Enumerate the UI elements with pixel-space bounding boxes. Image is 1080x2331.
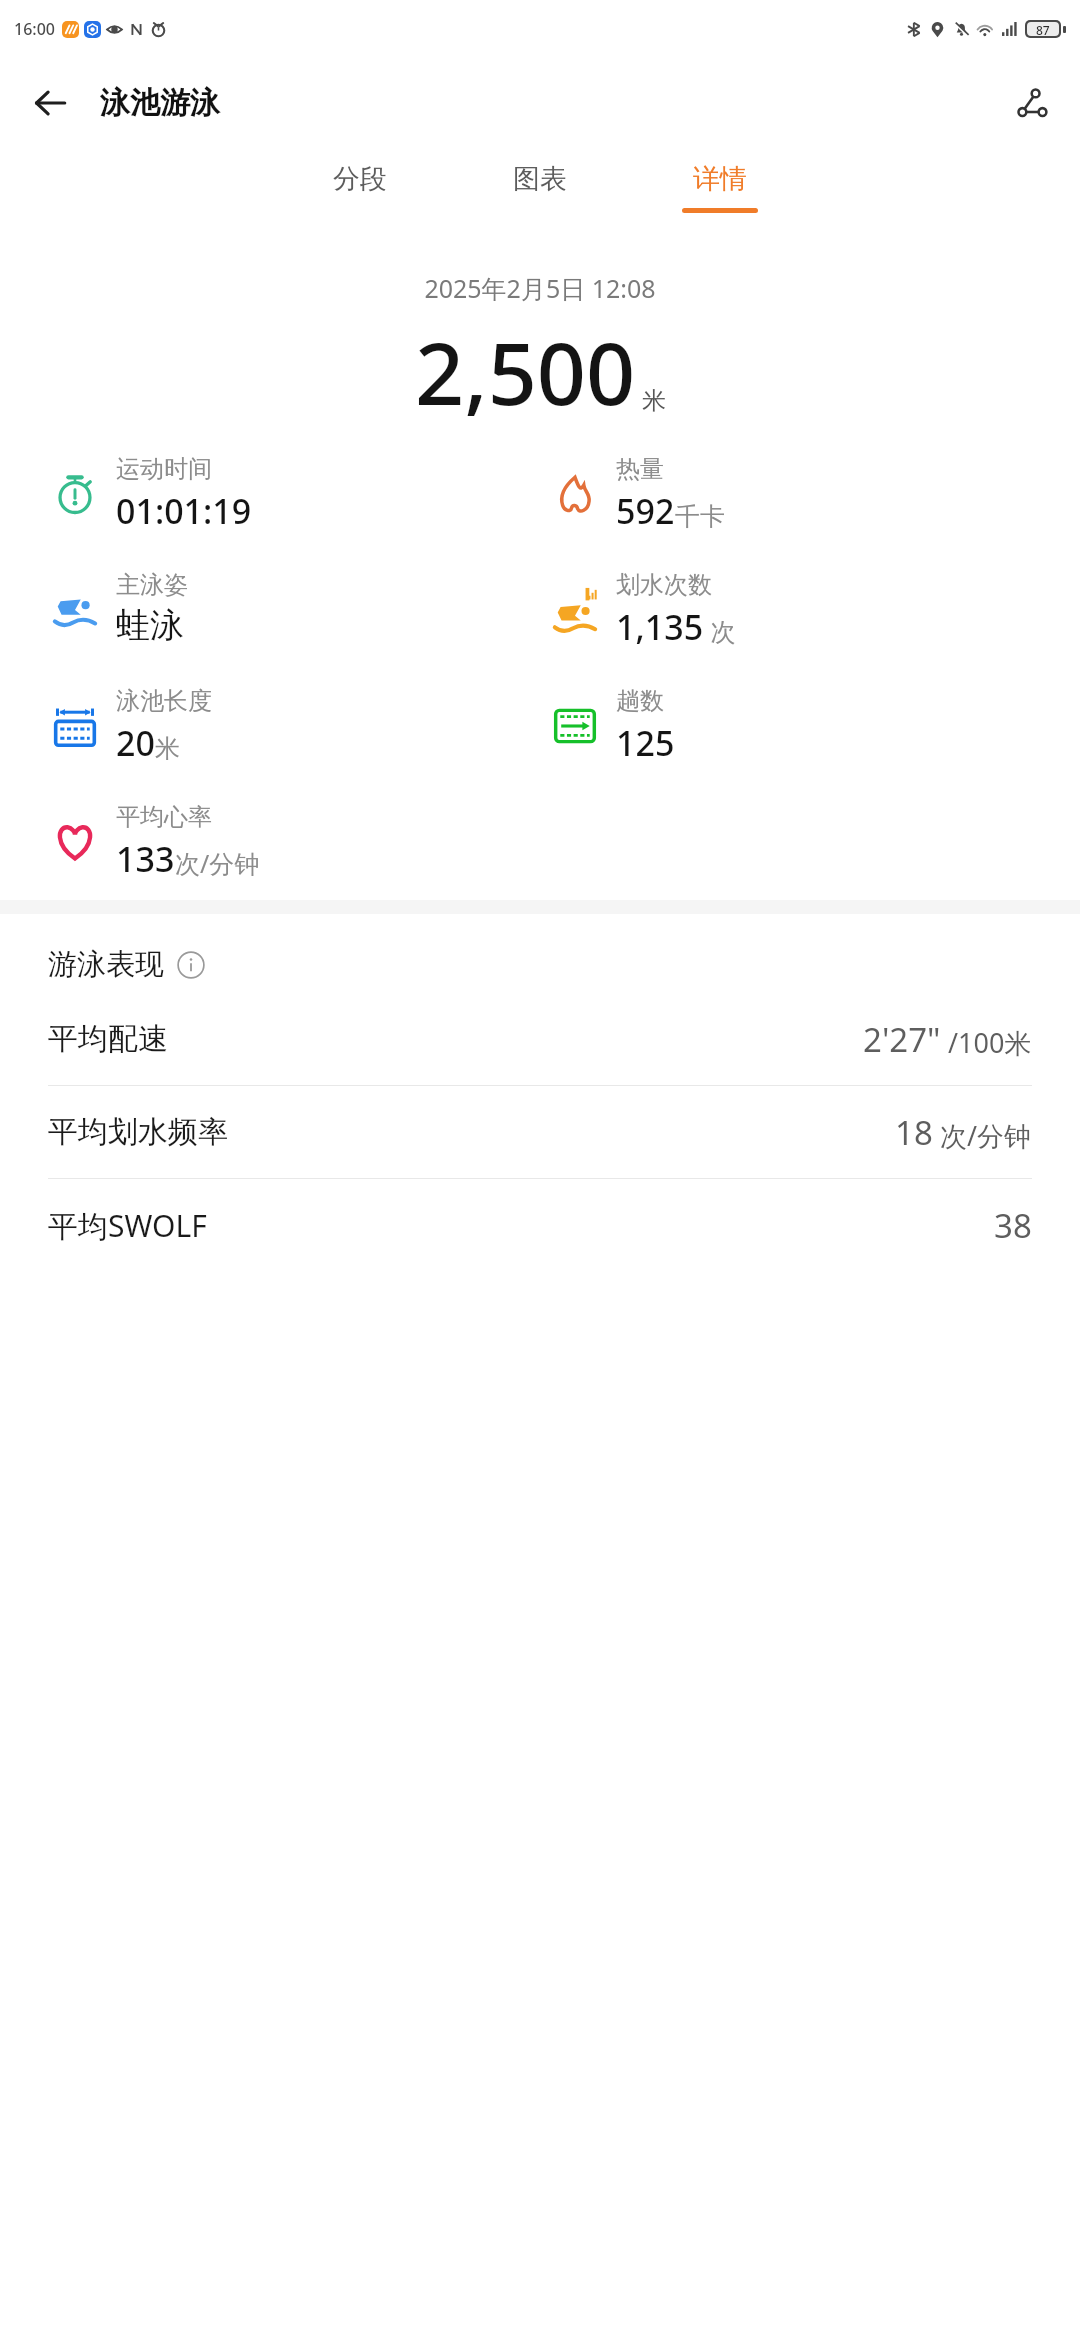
button[interactable]: 热量 [548, 454, 725, 534]
button[interactable]: 分段 [300, 148, 420, 253]
staticText: 平均SWOLF [48, 1205, 207, 1246]
staticText: /100米 [941, 1024, 1032, 1061]
staticText: 热量 [616, 454, 664, 484]
staticText: 泳池游泳 [100, 84, 220, 122]
button[interactable]: Share [1004, 75, 1060, 131]
staticText: 运动时间 [116, 454, 212, 484]
staticText: 1,135 [616, 604, 704, 650]
staticText: 泳池长度 [116, 686, 212, 716]
staticText: 16:00 [14, 18, 55, 40]
staticText: 次 [704, 614, 736, 648]
staticText: 详情 [693, 162, 747, 196]
button[interactable]: 图表 [480, 148, 600, 253]
staticText: 趟数 [616, 686, 664, 716]
staticText: 蛙泳 [116, 604, 184, 647]
staticText: 分段 [333, 162, 387, 196]
staticText: 平均配速 [48, 1020, 168, 1058]
staticText: 主泳姿 [116, 570, 188, 600]
staticText: 87 [1036, 22, 1050, 36]
staticText: 图表 [513, 162, 567, 196]
staticText: 千卡 [675, 501, 725, 532]
staticText: 2025年2月5日 12:08 [424, 271, 656, 305]
staticText: 18 [895, 1110, 933, 1155]
button[interactable]: 平均SWOLF [0, 1179, 1080, 1271]
staticText: 2'27" [863, 1017, 941, 1062]
staticText: 38 [994, 1203, 1032, 1248]
staticText: 划水次数 [616, 570, 712, 600]
staticText: 平均划水频率 [48, 1113, 228, 1151]
button[interactable]: Back [22, 75, 78, 131]
button[interactable]: 划水次数 [548, 570, 736, 650]
staticText: 20 [116, 720, 155, 766]
button[interactable]: 主泳姿 [48, 570, 188, 647]
staticText: 米 [155, 733, 180, 764]
staticText: 592 [616, 488, 675, 534]
button[interactable]: 平均心率 [48, 802, 260, 882]
staticText: 133 [116, 836, 175, 882]
staticText: 次/分钟 [175, 846, 260, 880]
staticText: 次/分钟 [933, 1117, 1032, 1154]
button[interactable]: Info [174, 948, 208, 982]
staticText: 米 [642, 386, 666, 416]
button[interactable]: 运动时间 [48, 454, 252, 534]
button[interactable]: 详情 [660, 148, 780, 253]
button[interactable]: 趟数 [548, 686, 675, 766]
staticText: 125 [616, 720, 675, 766]
staticText: 2,500 [415, 313, 636, 430]
button[interactable]: 平均配速 [0, 993, 1080, 1085]
staticText: 01:01:19 [116, 488, 252, 534]
staticText: 游泳表现 [48, 946, 164, 983]
button[interactable]: 平均划水频率 [0, 1086, 1080, 1178]
staticText: 平均心率 [116, 802, 212, 832]
button[interactable]: 泳池长度 [48, 686, 212, 766]
